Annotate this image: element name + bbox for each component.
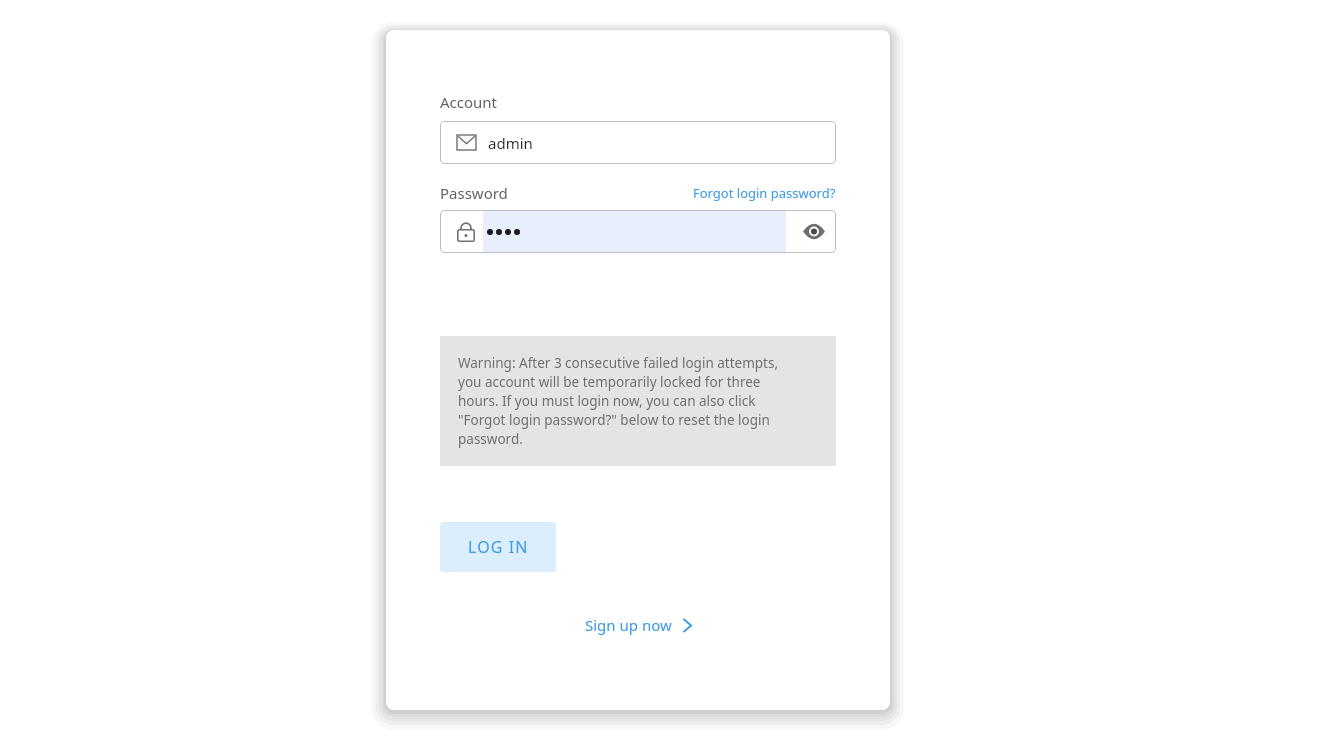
- button[interactable]: Forgot login password?: [693, 184, 836, 202]
- staticText: you account will be temporarily locked f…: [458, 373, 761, 391]
- staticText: Account: [440, 92, 498, 112]
- button[interactable]: LOG IN: [440, 522, 556, 572]
- button[interactable]: Show password: [792, 210, 836, 253]
- button[interactable]: Sign up now: [579, 611, 698, 639]
- staticText: hours. If you must login now, you can al…: [458, 392, 756, 410]
- button[interactable]: admin: [440, 121, 836, 164]
- staticText: admin: [488, 133, 533, 153]
- staticText: Password: [440, 183, 508, 203]
- staticText: password.: [458, 430, 523, 448]
- staticText: Sign up now: [585, 615, 672, 635]
- staticText: Warning: After 3 consecutive failed logi…: [458, 354, 779, 372]
- staticText: "Forgot login password?" below to reset …: [458, 411, 770, 429]
- staticText: LOG IN: [468, 536, 529, 558]
- staticText: Forgot login password?: [693, 184, 836, 202]
